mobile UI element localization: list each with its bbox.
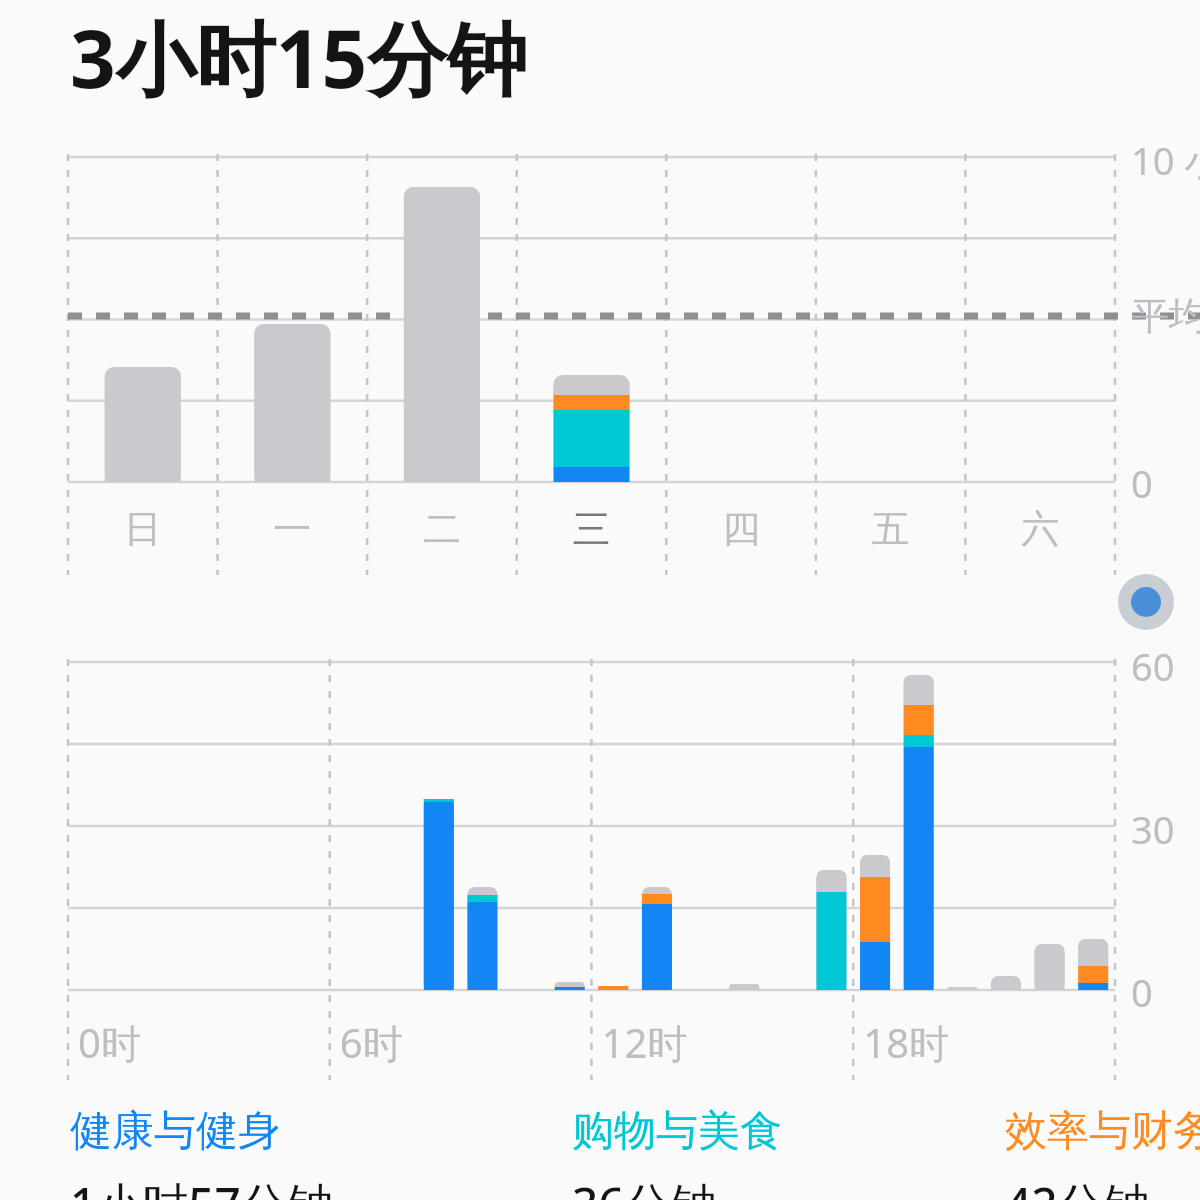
button[interactable]: 屏幕使用时间图表 [0, 0, 1200, 1200]
